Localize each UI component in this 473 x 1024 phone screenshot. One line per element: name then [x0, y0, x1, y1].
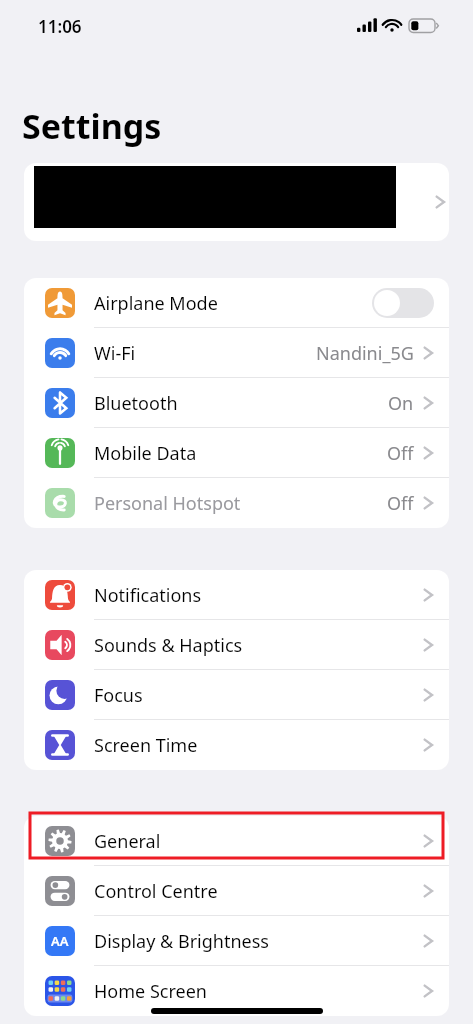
staticText: Bluetooth [94, 391, 178, 416]
button[interactable]: Focus [24, 670, 449, 720]
button[interactable]: Bluetooth [24, 378, 449, 428]
button[interactable]: Airplane Mode [24, 278, 449, 328]
button[interactable]: Control Centre [24, 866, 449, 916]
button[interactable]: Home Screen [24, 966, 449, 1016]
button[interactable]: Notifications [24, 570, 449, 620]
staticText: Nandini_5G [316, 341, 414, 366]
staticText: Airplane Mode [94, 291, 218, 316]
button[interactable]: Airplane Mode switch, off [372, 288, 434, 318]
staticText: Screen Time [94, 733, 198, 758]
staticText: On [388, 391, 414, 416]
staticText: Display & Brightness [94, 929, 269, 954]
staticText: Home Screen [94, 979, 207, 1004]
button[interactable]: Sounds & Haptics [24, 620, 449, 670]
button[interactable]: Personal Hotspot [24, 478, 449, 528]
button[interactable]: Screen Time [24, 720, 449, 770]
staticText: Notifications [94, 583, 202, 608]
button[interactable]: AA [24, 916, 449, 966]
staticText: Off [387, 491, 414, 516]
staticText: General [94, 829, 161, 854]
button[interactable]: Mobile Data [24, 428, 449, 478]
staticText: Personal Hotspot [94, 491, 241, 516]
staticText: Off [387, 441, 414, 466]
staticText: Wi-Fi [94, 341, 136, 366]
staticText: Mobile Data [94, 441, 197, 466]
button[interactable]: General [24, 816, 449, 866]
staticText: Sounds & Haptics [94, 633, 243, 658]
staticText: 11:06 [38, 15, 82, 38]
button[interactable]: Wi-Fi [24, 328, 449, 378]
staticText: Control Centre [94, 879, 218, 904]
staticText: Settings [22, 103, 162, 149]
staticText: Focus [94, 683, 143, 708]
button[interactable]: Apple ID profile [24, 163, 449, 241]
staticText: AA [51, 932, 69, 950]
